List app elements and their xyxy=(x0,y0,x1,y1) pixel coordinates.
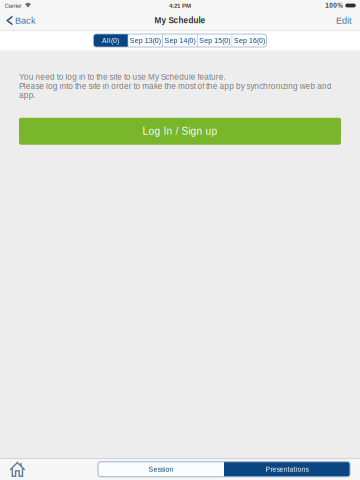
button[interactable]: Sep 14(0) xyxy=(163,34,197,47)
staticText: Back xyxy=(15,15,36,25)
button[interactable]: All(0) xyxy=(94,34,128,47)
button[interactable]: Home xyxy=(0,461,31,477)
button[interactable]: Sep 16(0) xyxy=(232,34,266,47)
button[interactable]: Sep 15(0) xyxy=(198,34,232,47)
button[interactable]: Sep 13(0) xyxy=(128,34,162,47)
button[interactable]: Edit xyxy=(332,11,360,29)
staticText: Sep 14(0) xyxy=(164,37,195,44)
staticText: Sep 15(0) xyxy=(199,37,230,44)
staticText: Sep 16(0) xyxy=(234,37,265,44)
staticText: Carrier xyxy=(4,2,21,9)
staticText: Please log into the site in order to mak… xyxy=(19,82,332,100)
staticText: All(0) xyxy=(102,37,119,44)
staticText: Session xyxy=(148,465,173,473)
button[interactable]: Presentations xyxy=(224,462,350,477)
staticText: 100% xyxy=(325,2,343,9)
staticText: Log In / Sign up xyxy=(142,126,217,137)
staticText: Presentations xyxy=(265,465,308,473)
staticText: 4:21 PM xyxy=(169,2,191,9)
button[interactable]: Log In / Sign up xyxy=(19,118,341,145)
staticText: You need to log in to the site to use My… xyxy=(19,72,226,82)
staticText: My Schedule xyxy=(154,16,205,25)
button[interactable]: Session xyxy=(98,462,224,477)
staticText: Edit xyxy=(336,15,352,25)
staticText: Sep 13(0) xyxy=(130,37,161,44)
button[interactable]: Back xyxy=(0,11,40,29)
